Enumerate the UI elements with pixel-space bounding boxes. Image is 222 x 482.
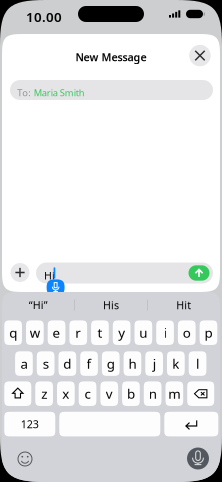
- button[interactable]: f: [80, 351, 98, 376]
- staticText: w: [30, 324, 40, 341]
- staticText: d: [63, 355, 71, 372]
- button[interactable]: Shift: [4, 381, 31, 406]
- staticText: b: [127, 385, 135, 402]
- button[interactable]: Close: [189, 45, 211, 66]
- staticText: v: [106, 385, 113, 402]
- button[interactable]: “Hi”: [2, 292, 75, 318]
- button[interactable]: r: [69, 320, 87, 345]
- staticText: i: [163, 324, 166, 341]
- button[interactable]: a: [15, 351, 33, 376]
- staticText: t: [97, 324, 102, 341]
- button[interactable]: g: [102, 351, 120, 376]
- staticText: p: [204, 324, 212, 341]
- button[interactable]: Add attachment: [10, 263, 29, 282]
- staticText: l: [196, 355, 199, 372]
- staticText: h: [128, 355, 136, 372]
- staticText: m: [168, 385, 180, 402]
- button[interactable]: t: [91, 320, 109, 345]
- button[interactable]: j: [145, 351, 163, 376]
- button[interactable]: Emoji: [16, 450, 34, 468]
- staticText: o: [183, 324, 191, 341]
- staticText: His: [103, 298, 119, 312]
- staticText: u: [139, 324, 147, 341]
- staticText: f: [86, 355, 91, 372]
- staticText: j: [153, 355, 156, 372]
- staticText: 10.00: [26, 8, 62, 26]
- button[interactable]: Dictate: [187, 447, 209, 469]
- staticText: Hit: [176, 298, 191, 312]
- button[interactable]: w: [26, 320, 44, 345]
- button[interactable]: u: [134, 320, 152, 345]
- button[interactable]: o: [178, 320, 196, 345]
- staticText: k: [172, 355, 179, 372]
- staticText: 123: [21, 417, 39, 431]
- staticText: y: [118, 324, 125, 341]
- button[interactable]: To:: [10, 80, 213, 100]
- staticText: New Message: [75, 50, 146, 64]
- staticText: e: [52, 324, 60, 341]
- button[interactable]: q: [4, 320, 22, 345]
- button[interactable]: v: [100, 381, 118, 406]
- staticText: n: [149, 385, 157, 402]
- staticText: To:: [17, 86, 31, 99]
- button[interactable]: Return: [164, 412, 218, 436]
- button[interactable]: d: [58, 351, 76, 376]
- staticText: Hi: [44, 268, 55, 282]
- button[interactable]: i: [156, 320, 174, 345]
- staticText: s: [43, 355, 49, 372]
- button[interactable]: y: [113, 320, 130, 345]
- button[interactable]: k: [167, 351, 185, 376]
- button[interactable]: Hit: [147, 292, 220, 318]
- staticText: z: [41, 385, 47, 402]
- button[interactable]: s: [37, 351, 54, 376]
- button[interactable]: h: [124, 351, 141, 376]
- button[interactable]: 123: [4, 412, 55, 436]
- button[interactable]: p: [200, 320, 217, 345]
- staticText: x: [62, 385, 69, 402]
- button[interactable]: His: [75, 292, 147, 318]
- staticText: “Hi”: [29, 298, 48, 312]
- button[interactable]: c: [79, 381, 96, 406]
- staticText: c: [84, 385, 90, 402]
- button[interactable]: m: [165, 381, 183, 406]
- staticText: a: [20, 355, 27, 372]
- button[interactable]: x: [57, 381, 75, 406]
- button[interactable]: z: [35, 381, 53, 406]
- button[interactable]: e: [48, 320, 65, 345]
- button[interactable]: b: [122, 381, 140, 406]
- button[interactable]: l: [189, 351, 206, 376]
- staticText: g: [107, 355, 115, 372]
- staticText: Maria Smith: [34, 86, 85, 99]
- button[interactable]: Send: [188, 265, 209, 281]
- staticText: r: [75, 324, 81, 341]
- button[interactable]: Delete: [187, 381, 214, 406]
- button[interactable]: n: [144, 381, 161, 406]
- staticText: q: [9, 324, 17, 341]
